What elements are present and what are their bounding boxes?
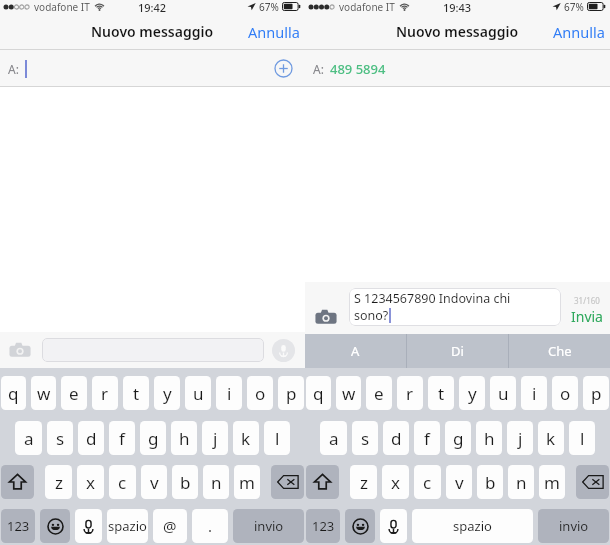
button[interactable]: q	[306, 376, 331, 410]
button[interactable]: p	[583, 376, 609, 410]
button[interactable]: Di	[407, 334, 508, 368]
button[interactable]: r	[397, 376, 423, 410]
button[interactable]: Annulla	[238, 17, 305, 47]
button[interactable]: m	[234, 465, 260, 499]
button[interactable]: m	[539, 465, 565, 499]
staticText: o	[255, 382, 266, 405]
button[interactable]: b	[477, 465, 503, 499]
button[interactable]: spazio	[107, 509, 148, 543]
staticText: j	[518, 427, 523, 450]
button[interactable]: 123	[306, 509, 340, 543]
button[interactable]: a	[15, 421, 42, 455]
button[interactable]: e	[61, 376, 87, 410]
button[interactable]: Maiuscole	[306, 465, 339, 499]
button[interactable]: t	[123, 376, 149, 410]
staticText: k	[241, 427, 251, 450]
button[interactable]: r	[92, 376, 118, 410]
staticText: @	[163, 516, 177, 536]
button[interactable]: z	[45, 465, 72, 499]
button[interactable]: f	[109, 421, 135, 455]
button[interactable]: d	[383, 421, 409, 455]
button[interactable]: c	[414, 465, 441, 499]
button[interactable]: Fotocamera	[9, 341, 31, 359]
button[interactable]: j	[202, 421, 228, 455]
button[interactable]: j	[507, 421, 533, 455]
button[interactable]: .	[192, 509, 228, 543]
button[interactable]: f	[414, 421, 440, 455]
button[interactable]: k	[233, 421, 259, 455]
button[interactable]: g	[140, 421, 166, 455]
button[interactable]: spazio	[412, 509, 533, 543]
button[interactable]: u	[185, 376, 211, 410]
button[interactable]: Cancella	[271, 465, 304, 499]
button[interactable]: i	[521, 376, 547, 410]
staticText: 19:42	[138, 0, 167, 13]
button[interactable]: w	[336, 376, 361, 410]
button[interactable]	[380, 509, 407, 543]
staticText: u	[193, 382, 204, 405]
button[interactable]: s	[352, 421, 378, 455]
button[interactable]	[75, 509, 102, 543]
staticText: invio	[254, 517, 284, 535]
button[interactable]: q	[1, 376, 26, 410]
button[interactable]: w	[31, 376, 56, 410]
staticText: h	[179, 427, 190, 450]
staticText: l	[580, 427, 585, 450]
button[interactable]: Invia	[571, 307, 603, 326]
staticText: t	[438, 382, 445, 405]
button[interactable]: x	[382, 465, 409, 499]
button[interactable]: Emoji	[40, 509, 70, 543]
staticText: g	[148, 427, 159, 450]
button[interactable]: v	[446, 465, 472, 499]
button[interactable]: Che	[509, 334, 610, 368]
button[interactable]: n	[203, 465, 229, 499]
staticText: t	[133, 382, 140, 405]
staticText: q	[8, 382, 19, 405]
button[interactable]: z	[350, 465, 377, 499]
staticText: l	[275, 427, 280, 450]
button[interactable]: Emoji	[345, 509, 375, 543]
button[interactable]: v	[141, 465, 167, 499]
button[interactable]: p	[278, 376, 304, 410]
button[interactable]: l	[264, 421, 290, 455]
staticText: vodafone IT	[339, 0, 395, 13]
button[interactable]: x	[77, 465, 104, 499]
button[interactable]: @	[153, 509, 187, 543]
button[interactable]: b	[172, 465, 198, 499]
button[interactable]: invio	[538, 509, 609, 543]
staticText: n	[516, 471, 527, 494]
button[interactable]: n	[508, 465, 534, 499]
button[interactable]: A	[305, 334, 406, 368]
button[interactable]: y	[459, 376, 485, 410]
staticText: Invia	[571, 307, 603, 326]
button[interactable]: t	[428, 376, 454, 410]
button[interactable]: l	[569, 421, 595, 455]
button[interactable]: Fotocamera	[315, 308, 337, 326]
button[interactable]: a	[320, 421, 347, 455]
button[interactable]: o	[247, 376, 273, 410]
button[interactable]: y	[154, 376, 180, 410]
button[interactable]: c	[109, 465, 136, 499]
staticText: 123	[312, 517, 335, 535]
button[interactable]: k	[538, 421, 564, 455]
button[interactable]: d	[78, 421, 104, 455]
button[interactable]: s	[47, 421, 73, 455]
button[interactable]: h	[476, 421, 502, 455]
button[interactable]: invio	[233, 509, 304, 543]
staticText: i	[227, 382, 232, 405]
button[interactable]: h	[171, 421, 197, 455]
button[interactable]: Maiuscole	[1, 465, 34, 499]
button[interactable]	[42, 338, 264, 362]
staticText: g	[453, 427, 464, 450]
button[interactable]: Cancella	[576, 465, 609, 499]
button[interactable]: g	[445, 421, 471, 455]
button[interactable]: u	[490, 376, 516, 410]
button[interactable]: 123	[1, 509, 35, 543]
button[interactable]: Aggiungi contatto	[274, 59, 293, 78]
button[interactable]: i	[216, 376, 242, 410]
button[interactable]: Dettatura	[272, 339, 295, 362]
button[interactable]: e	[366, 376, 392, 410]
button[interactable]: Annulla	[543, 17, 610, 47]
button[interactable]: o	[552, 376, 578, 410]
staticText: x	[86, 471, 95, 494]
